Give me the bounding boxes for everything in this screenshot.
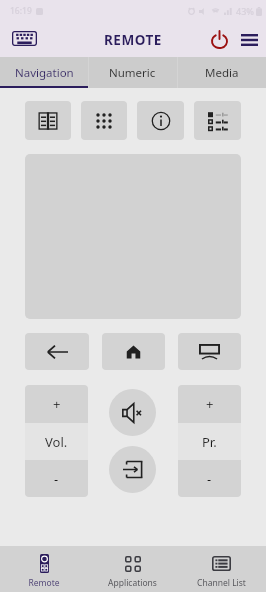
staticText: Navigation [15,65,74,81]
button[interactable]: Input source [109,446,156,493]
staticText: Media [205,65,239,81]
button[interactable]: Numeric [88,57,177,88]
staticText: - [207,470,212,488]
button[interactable]: Keypad [81,101,127,140]
staticText: Remote [28,577,60,589]
button[interactable]: - [178,460,241,497]
button[interactable]: Power [206,27,232,53]
staticText: 43% [236,5,254,17]
staticText: Channel List [197,577,246,589]
button[interactable]: Info [137,101,184,140]
staticText: Vol. [45,433,68,451]
button[interactable]: + [25,385,88,423]
button[interactable]: Remote [0,546,88,592]
button[interactable]: Channel list [194,101,241,140]
button[interactable]: + [178,385,241,423]
button[interactable]: Back [25,333,89,370]
button[interactable]: Channel List [177,546,266,592]
button[interactable]: Source [178,333,241,370]
staticText: + [53,395,61,413]
staticText: Numeric [109,65,156,81]
button[interactable]: Applications [88,546,177,592]
staticText: + [206,395,214,413]
staticText: 16:19 [10,5,32,17]
button[interactable]: Menu [236,27,262,53]
button[interactable]: Guide [25,101,71,140]
staticText: REMOTE [104,31,162,49]
button[interactable]: Media [177,57,266,88]
button[interactable]: Navigation [0,57,88,88]
button[interactable]: Keyboard [9,25,39,51]
button[interactable]: - [25,460,88,497]
staticText: Applications [108,577,157,589]
button[interactable]: Home [102,333,165,370]
staticText: Pr. [202,433,217,451]
staticText: - [54,470,59,488]
button[interactable]: Mute [109,389,156,436]
